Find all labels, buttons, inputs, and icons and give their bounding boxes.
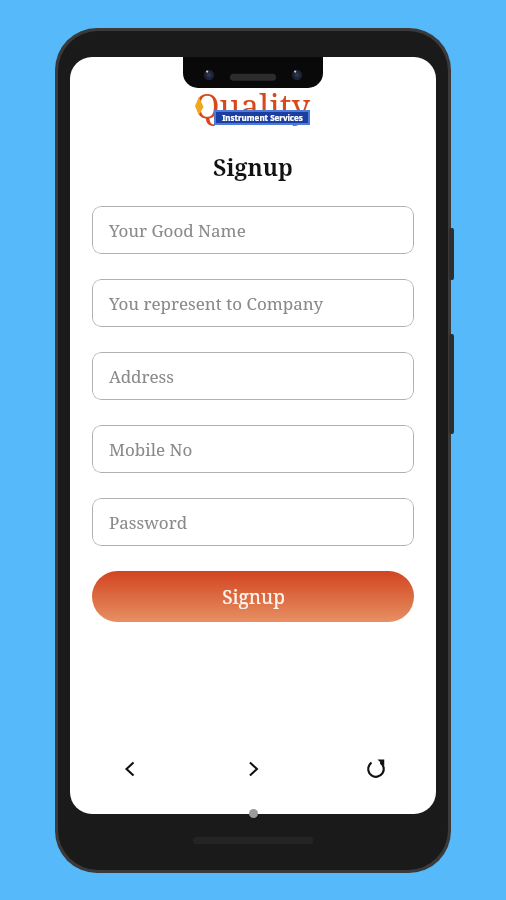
button[interactable]: Signup — [92, 571, 414, 622]
button[interactable]: Mobile No — [92, 425, 414, 473]
staticText: Instrument Services — [222, 112, 303, 123]
button[interactable]: Your Good Name — [92, 206, 414, 254]
button[interactable]: Back — [108, 747, 152, 791]
staticText: Mobile No — [109, 438, 193, 461]
staticText: Signup — [222, 584, 285, 610]
button[interactable]: Refresh — [354, 747, 398, 791]
button[interactable]: Address — [92, 352, 414, 400]
staticText: Signup — [213, 151, 293, 182]
staticText: Address — [109, 365, 174, 388]
staticText: Quality — [195, 83, 311, 128]
button[interactable]: Password — [92, 498, 414, 546]
button[interactable]: You represent to Company — [92, 279, 414, 327]
staticText: You represent to Company — [109, 292, 323, 315]
staticText: Password — [109, 511, 188, 534]
staticText: Your Good Name — [109, 219, 246, 242]
button[interactable]: Forward — [231, 747, 275, 791]
